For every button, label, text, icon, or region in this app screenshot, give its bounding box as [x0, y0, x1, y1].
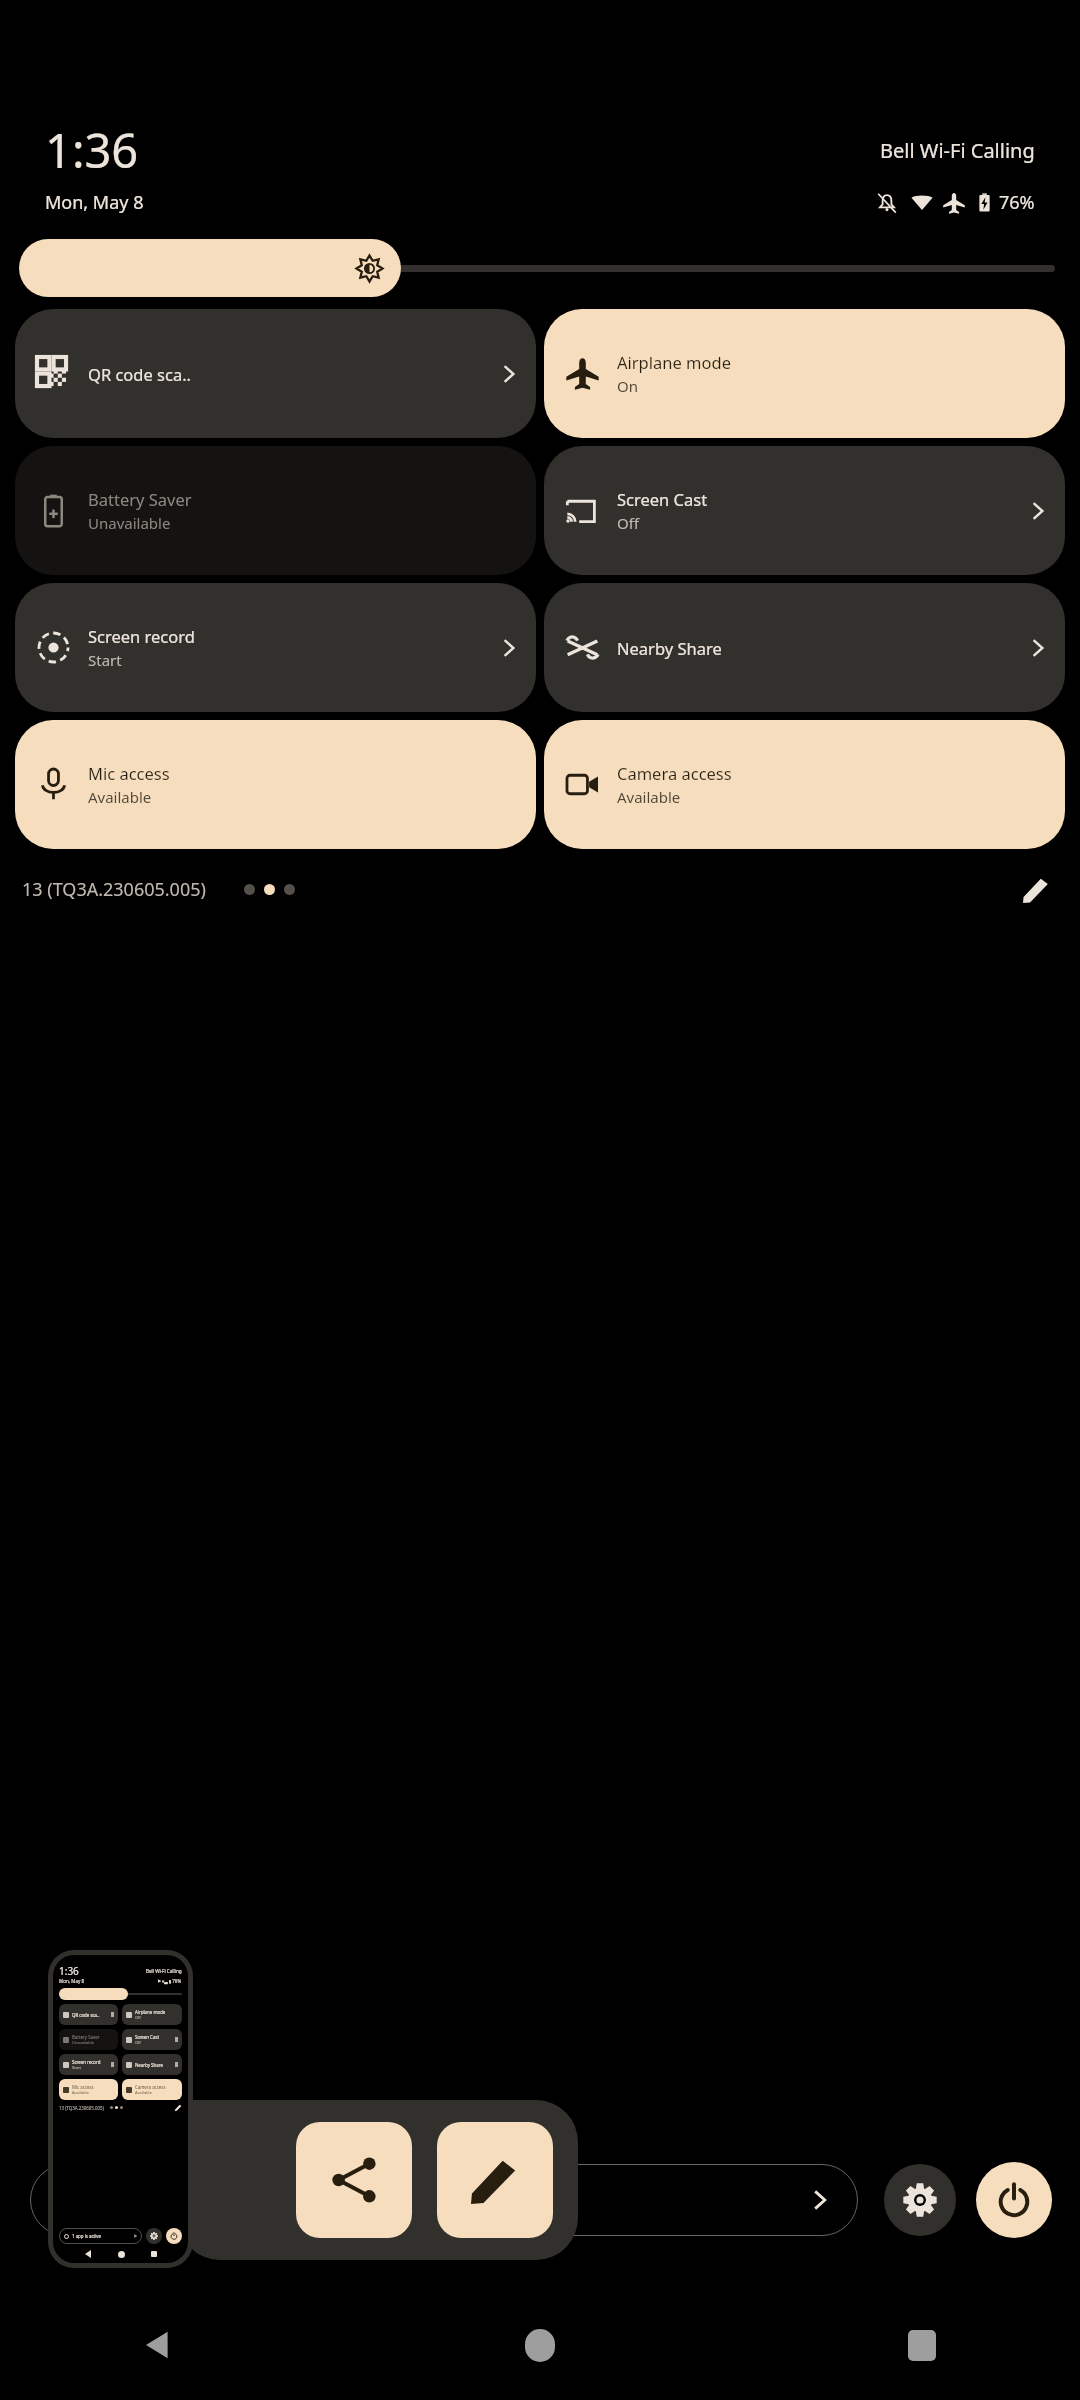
staticText: Start	[88, 650, 122, 670]
staticText: Available	[617, 787, 681, 807]
staticText: Mon, May 8	[45, 190, 144, 215]
button[interactable]: QR code sca..	[15, 309, 536, 438]
staticText: Battery Saver	[88, 488, 192, 510]
button[interactable]: Power	[976, 2162, 1052, 2238]
staticText: Airplane mode	[617, 351, 731, 373]
button[interactable]: Screen Cast	[544, 446, 1065, 575]
staticText: Available	[88, 787, 152, 807]
button[interactable]: Edit tiles	[1014, 867, 1058, 911]
staticText: Off	[135, 2015, 141, 2020]
staticText: 1 app is active	[72, 2233, 102, 2239]
button[interactable]: 1:36	[53, 1955, 188, 2263]
button[interactable]	[30, 2164, 858, 2236]
staticText: Unavailable	[88, 513, 171, 533]
button[interactable]: Back	[120, 2307, 196, 2383]
staticText: Nearby Share	[135, 2062, 163, 2068]
staticText: QR code sca..	[88, 363, 192, 385]
staticText: Screen Cast	[617, 488, 708, 510]
button[interactable]: Airplane mode	[544, 309, 1065, 438]
staticText: Nearby Share	[617, 637, 722, 659]
staticText: Available	[72, 2090, 89, 2095]
staticText: Screen Cast	[135, 2034, 159, 2040]
staticText: Bell Wi-Fi Calling	[880, 137, 1035, 164]
button[interactable]: Recents	[884, 2307, 960, 2383]
staticText: >	[134, 2233, 137, 2239]
staticText: On	[617, 376, 638, 396]
staticText: Bell Wi-Fi Calling	[146, 1968, 182, 1974]
staticText: Off	[617, 513, 640, 533]
button[interactable]: Settings	[884, 2164, 956, 2236]
button[interactable]: Camera access	[544, 720, 1065, 849]
staticText: 1:36	[59, 1964, 79, 1978]
staticText: Available	[135, 2090, 152, 2095]
button[interactable]: Mic access	[15, 720, 536, 849]
button[interactable]: Nearby Share	[544, 583, 1065, 712]
staticText: Off	[135, 2040, 141, 2045]
staticText: Battery Saver	[72, 2034, 100, 2040]
button[interactable]: Brightness	[19, 239, 1061, 297]
staticText: 13 (TQ3A.230605.005)	[22, 877, 206, 902]
button[interactable]: Edit screenshot	[437, 2122, 553, 2238]
staticText: Camera access	[617, 762, 732, 784]
staticText: Start	[72, 2065, 81, 2070]
staticText: Mic access	[72, 2084, 94, 2090]
button[interactable]: Battery Saver	[15, 446, 536, 575]
staticText: 1:36	[45, 118, 139, 182]
staticText: Mon, May 8	[59, 1978, 85, 1984]
staticText: 76%	[999, 190, 1035, 215]
staticText: ⚑ ▾▃ ▮ 76%	[157, 1978, 182, 1984]
staticText: QR code sca..	[72, 2012, 100, 2018]
button[interactable]: Share screenshot	[296, 2122, 412, 2238]
staticText: Unavailable	[72, 2040, 94, 2045]
staticText: Airplane mode	[135, 2009, 166, 2015]
staticText: Camera access	[135, 2084, 166, 2090]
staticText: Mic access	[88, 762, 170, 784]
button[interactable]: Home	[502, 2307, 578, 2383]
button[interactable]: Screen record	[15, 583, 536, 712]
staticText: Screen record	[72, 2059, 101, 2065]
staticText: Screen record	[88, 625, 195, 647]
staticText: 13 (TQ3A.230605.005)	[59, 2105, 104, 2111]
